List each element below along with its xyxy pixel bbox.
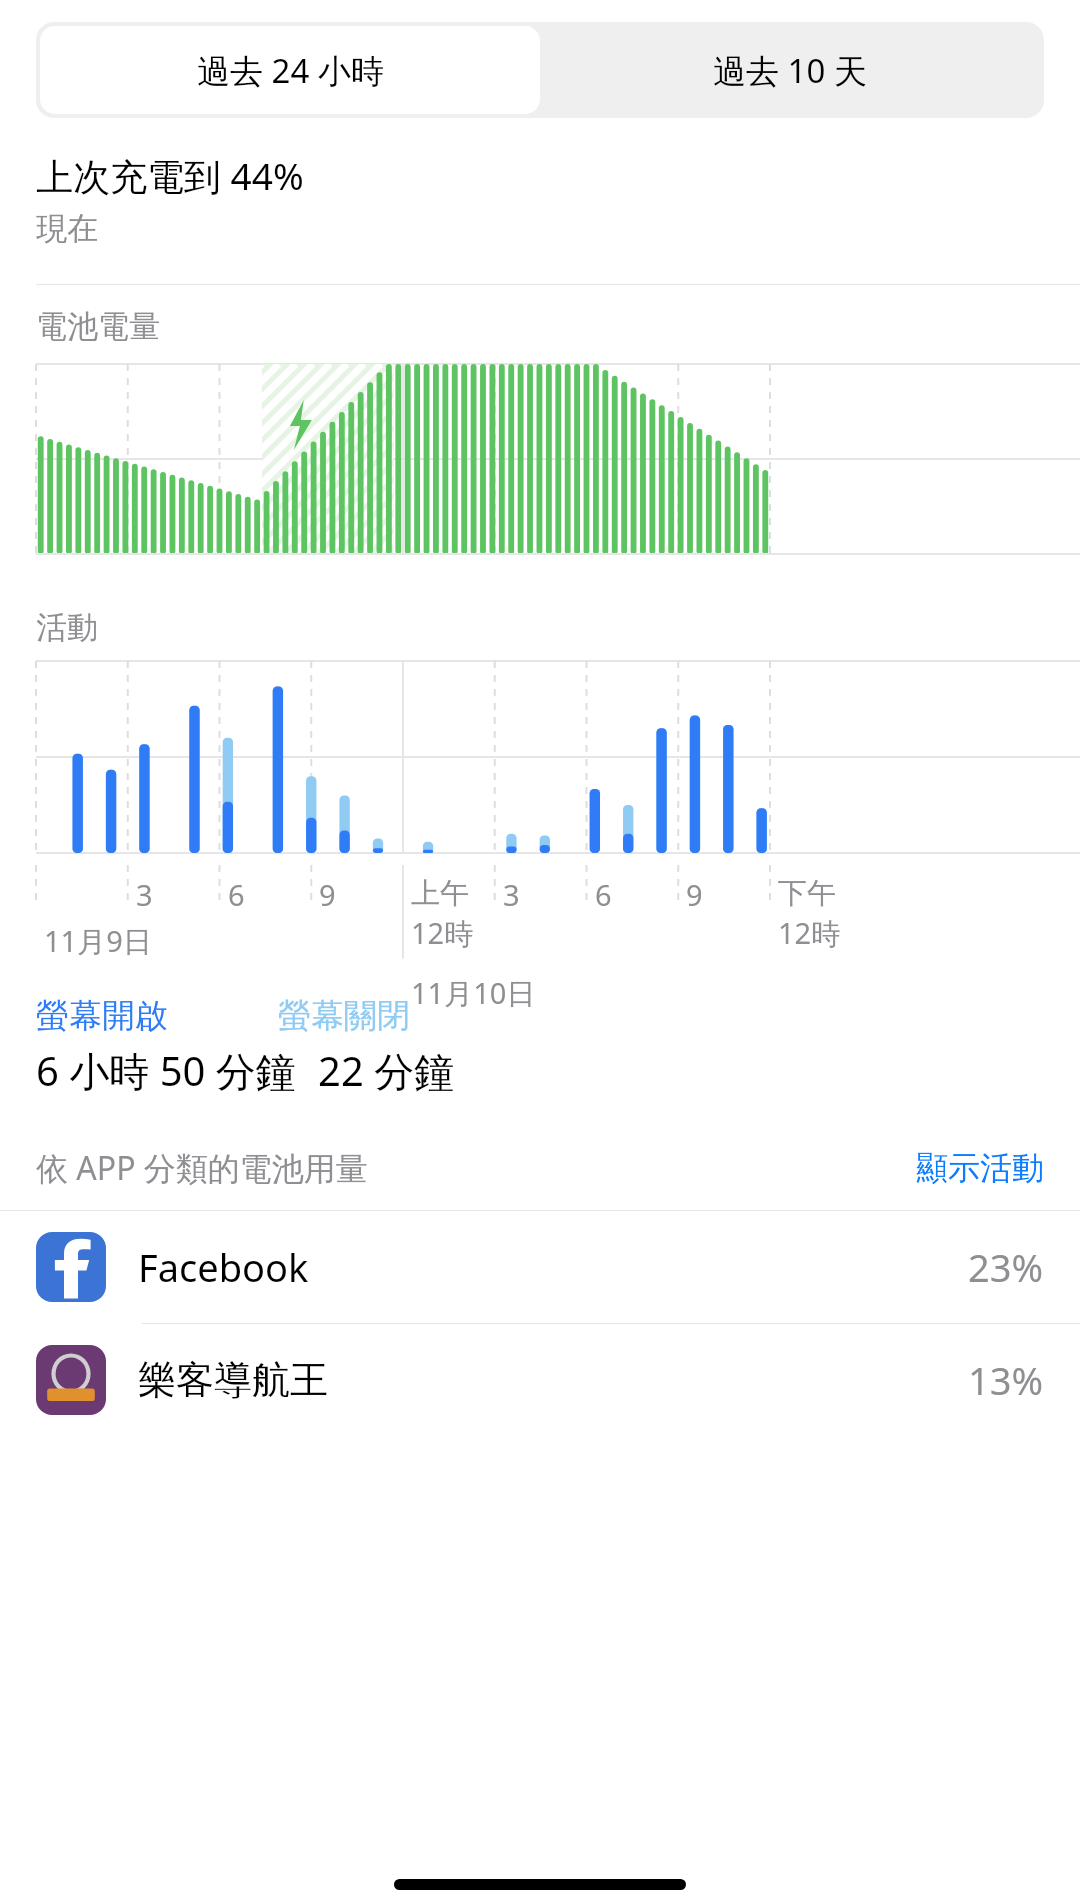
staticText: 上次充電到 44% [36,150,304,201]
staticText: 9 [319,875,336,914]
staticText: 依 APP 分類的電池用量 [36,1146,368,1190]
staticText: 23% [968,1241,1044,1293]
staticText: 13% [968,1354,1044,1406]
staticText: 6 小時 50 分鐘 [36,1043,296,1098]
staticText: 3 [136,875,153,914]
staticText: 現在 [36,209,98,248]
staticText: 11月10日 [411,973,536,1013]
staticText: 過去 10 天 [713,48,867,93]
button[interactable]: 過去 10 天 [540,26,1040,114]
staticText: 螢幕開啟 [36,995,168,1037]
staticText: 6 [595,875,612,914]
button[interactable]: 顯示活動 [916,1148,1044,1188]
staticText: 6 [228,875,245,914]
staticText: Facebook [138,1241,309,1293]
staticText: 樂客導航王 [138,1356,328,1404]
staticText: 11月9日 [44,921,152,961]
staticText: 過去 24 小時 [197,48,384,93]
staticText: 3 [503,875,520,914]
staticText: 活動 [36,608,98,647]
button[interactable]: Facebook [0,1211,1080,1323]
button[interactable]: 樂客導航王 [0,1324,1080,1436]
staticText: 22 分鐘 [318,1043,455,1098]
staticText: 電池電量 [36,307,160,346]
staticText: 顯示活動 [916,1148,1044,1188]
staticText: 9 [686,875,703,914]
staticText: 上午 12時 [411,875,474,953]
staticText: 螢幕關閉 [278,995,410,1037]
button[interactable]: 過去 24 小時 [40,26,540,114]
staticText: 下午 12時 [778,875,841,953]
